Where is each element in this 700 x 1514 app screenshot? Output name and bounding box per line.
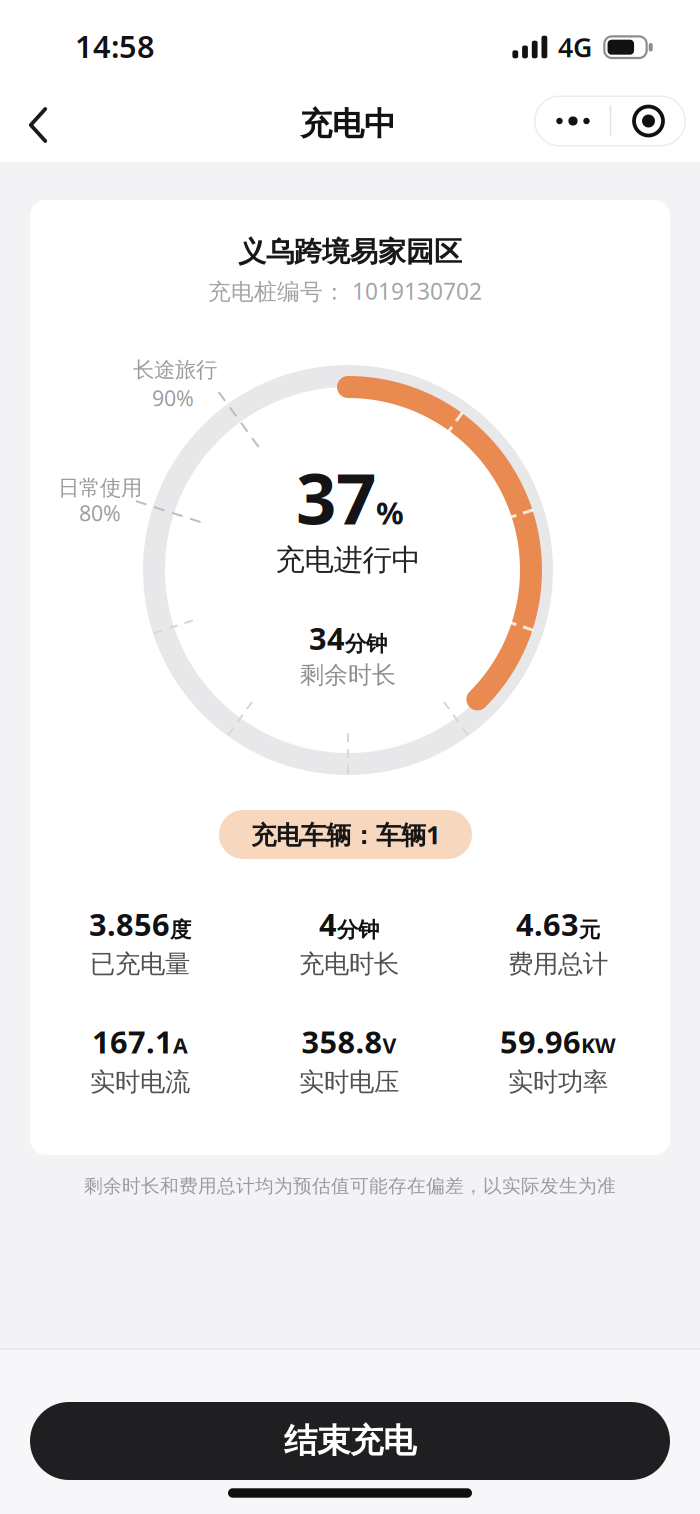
staticText: 已充电量 (90, 948, 190, 979)
staticText: 剩余时长和费用总计均为预估值可能存在偏差，以实际发生为准 (84, 1174, 616, 1197)
button[interactable]: Back (19, 97, 57, 153)
staticText: 37% (296, 450, 404, 544)
staticText: 4分钟 (319, 904, 379, 944)
staticText: 义乌跨境易家园区 (238, 235, 462, 269)
staticText: 充电中 (300, 104, 396, 144)
staticText: 358.8V (301, 1021, 396, 1062)
button[interactable]: More (534, 95, 610, 146)
staticText: 充电车辆：车辆1 (251, 818, 440, 851)
staticText: 14:58 (75, 26, 155, 66)
staticText: 费用总计 (508, 948, 608, 979)
staticText: 3.856度 (89, 904, 191, 944)
staticText: 剩余时长 (300, 660, 396, 690)
staticText: 充电桩编号： 1019130702 (208, 276, 482, 306)
staticText: 充电进行中 (275, 542, 420, 578)
staticText: 结束充电 (284, 1420, 416, 1461)
staticText: 4G (558, 29, 592, 65)
button[interactable]: Close (611, 95, 686, 146)
staticText: 80% (79, 499, 121, 527)
staticText: 59.96KW (500, 1021, 616, 1062)
staticText: 167.1A (92, 1021, 188, 1062)
staticText: 长途旅行 (133, 357, 217, 383)
staticText: 实时功率 (508, 1066, 608, 1097)
staticText: 4.63元 (516, 904, 600, 944)
staticText: 日常使用 (58, 475, 142, 501)
staticText: 充电时长 (299, 948, 399, 979)
staticText: 34分钟 (309, 618, 387, 658)
staticText: 实时电压 (299, 1066, 399, 1097)
button[interactable]: 结束充电 (30, 1402, 670, 1480)
staticText: 90% (152, 384, 194, 412)
staticText: 实时电流 (90, 1066, 190, 1097)
